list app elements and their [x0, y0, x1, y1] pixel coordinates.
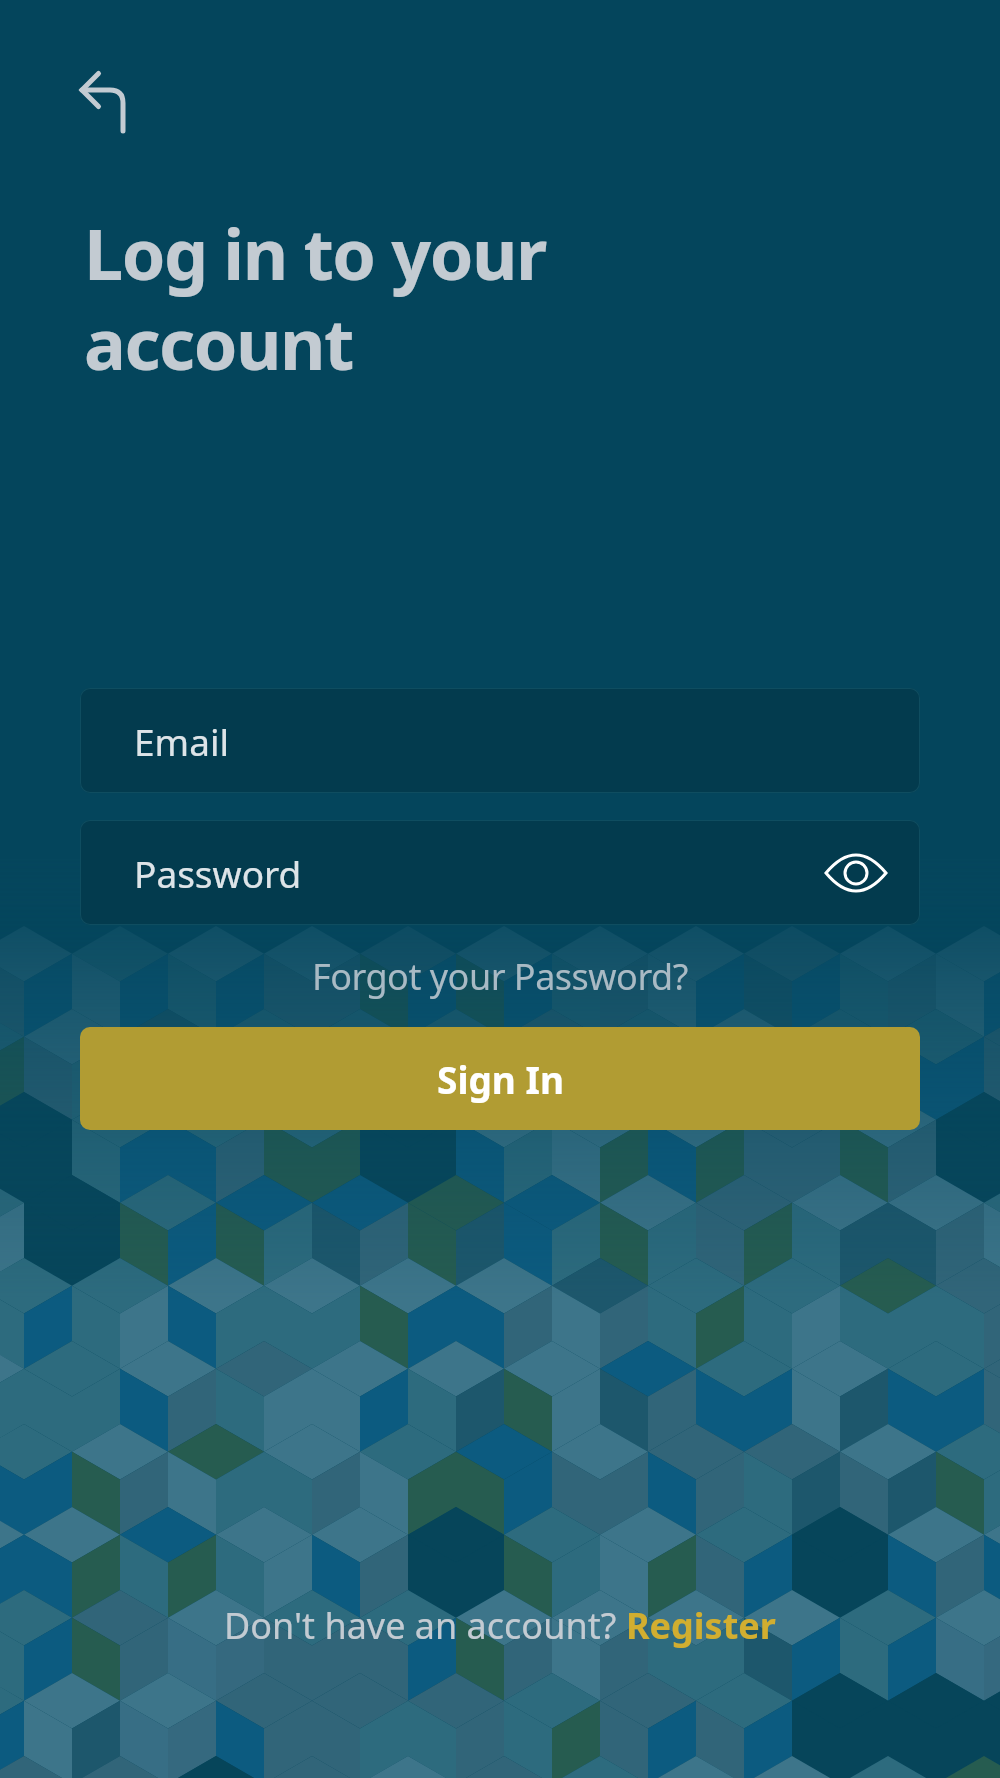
staticText: Forgot your Password? [312, 952, 688, 1001]
staticText: Log in to your account [84, 205, 546, 390]
button[interactable] [826, 843, 886, 903]
staticText: Sign In [437, 1054, 564, 1104]
button[interactable]: Email [80, 688, 920, 793]
button[interactable]: Password [80, 820, 920, 925]
button[interactable]: Forgot your Password? [312, 952, 688, 1001]
staticText: Register [626, 1601, 776, 1650]
button[interactable]: Sign In [80, 1027, 920, 1130]
staticText: Email [134, 716, 230, 766]
staticText: Don't have an account? [224, 1601, 626, 1650]
staticText: Password [134, 848, 302, 898]
button[interactable] [62, 54, 142, 150]
button[interactable]: Register [626, 1601, 776, 1650]
